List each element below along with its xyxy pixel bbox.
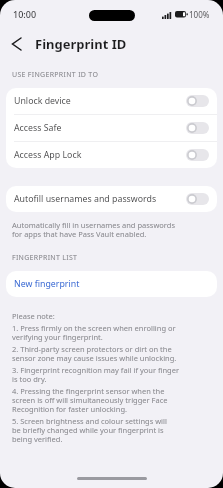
button[interactable]: Autofill usernames and passwords bbox=[6, 186, 217, 212]
staticText: Autofill usernames and passwords bbox=[14, 193, 157, 205]
button[interactable]: Access App Lock bbox=[6, 142, 217, 168]
staticText: USE FINGERPRINT ID TO bbox=[12, 70, 99, 80]
staticText: FINGERPRINT LIST bbox=[12, 253, 78, 263]
button[interactable]: Unlock device bbox=[6, 88, 217, 114]
staticText: 4. Pressing the fingerprint sensor when … bbox=[12, 386, 168, 414]
staticText: Access Safe bbox=[14, 122, 62, 134]
staticText: 3. Fingerprint recognition may fail if y… bbox=[12, 365, 180, 384]
staticText: Automatically fill in usernames and pass… bbox=[12, 220, 176, 240]
staticText: Please note: bbox=[12, 311, 55, 321]
staticText: New fingerprint bbox=[14, 278, 80, 290]
staticText: 5. Screen brightness and colour settings… bbox=[12, 416, 167, 444]
staticText: Access App Lock bbox=[14, 149, 82, 161]
staticText: 1. Press firmly on the screen when enrol… bbox=[12, 323, 176, 342]
staticText: 2. Third-party screen protectors or dirt… bbox=[12, 344, 177, 363]
staticText: Unlock device bbox=[14, 95, 71, 107]
staticText: Fingerprint ID bbox=[35, 35, 127, 53]
staticText: 100% bbox=[189, 9, 210, 20]
button[interactable]: Access Safe bbox=[6, 115, 217, 141]
staticText: 10:00 bbox=[13, 8, 37, 20]
button[interactable]: New fingerprint bbox=[6, 271, 217, 297]
button[interactable] bbox=[0, 28, 32, 60]
